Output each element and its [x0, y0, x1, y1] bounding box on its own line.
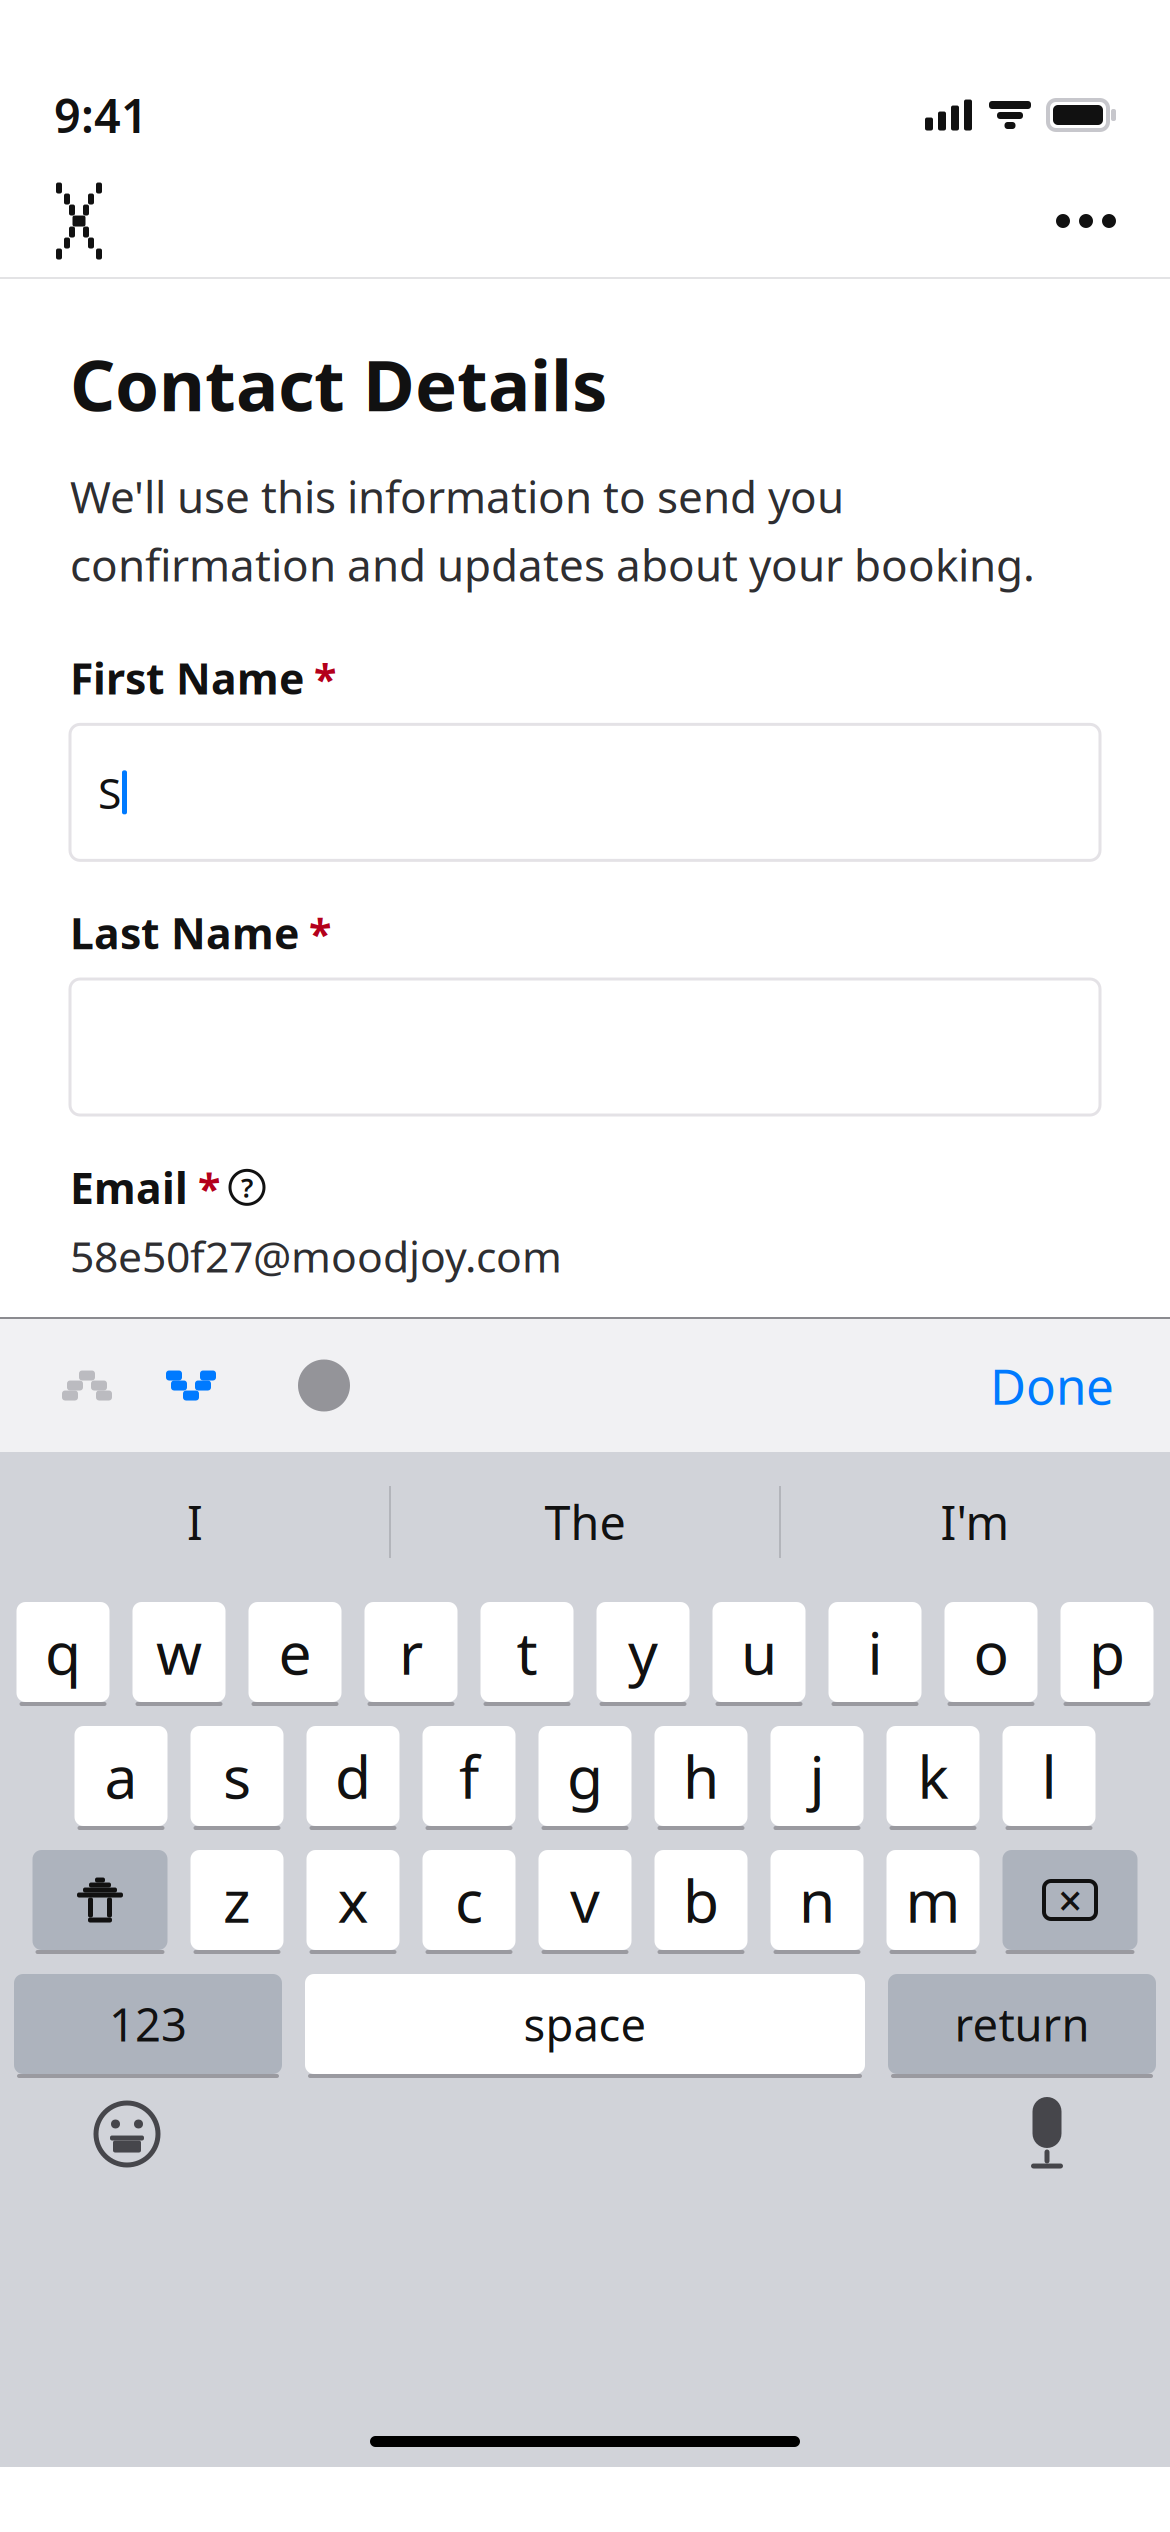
button[interactable]: p [1060, 1602, 1153, 1706]
staticText: r [399, 1613, 423, 1691]
button[interactable]: v [538, 1850, 631, 1954]
staticText: The [544, 1491, 625, 1553]
staticText: h [683, 1737, 719, 1815]
staticText: space [523, 1994, 646, 2054]
staticText: m [905, 1861, 960, 1939]
staticText: n [799, 1861, 835, 1939]
staticText: 9:41 [54, 84, 148, 146]
button[interactable]: space [305, 1974, 865, 2078]
staticText: Contact Details [70, 337, 607, 431]
button[interactable]: g [538, 1726, 631, 1830]
button[interactable]: m [886, 1850, 979, 1954]
staticText: l [1041, 1737, 1056, 1815]
staticText: v [570, 1861, 600, 1939]
staticText: q [45, 1613, 81, 1691]
staticText: I [187, 1491, 203, 1553]
button[interactable]: d [306, 1726, 399, 1830]
button[interactable] [70, 979, 1100, 1115]
button[interactable]: AutoFill [284, 1345, 364, 1425]
button[interactable]: c [422, 1850, 515, 1954]
button[interactable]: Shift [32, 1850, 167, 1954]
staticText: w [156, 1613, 202, 1691]
button[interactable]: return [888, 1974, 1156, 2078]
staticText: confirmation and updates about your book… [70, 535, 1035, 594]
staticText: g [567, 1737, 603, 1815]
button[interactable]: Dictation [1016, 2096, 1078, 2172]
staticText: Done [990, 1353, 1114, 1418]
staticText: j [809, 1737, 824, 1815]
button[interactable]: e [248, 1602, 341, 1706]
button[interactable]: Emoji keyboard [92, 2099, 162, 2169]
staticText: k [917, 1737, 948, 1815]
staticText: return [954, 1994, 1089, 2054]
staticText: 58e50f27@moodjoy.com [70, 1228, 562, 1284]
button[interactable]: r [364, 1602, 457, 1706]
staticText: u [741, 1613, 777, 1691]
staticText: × [1058, 1872, 1082, 1928]
button[interactable]: I [1, 1466, 389, 1578]
staticText: y [628, 1613, 658, 1691]
staticText: o [973, 1613, 1008, 1691]
button[interactable]: q [16, 1602, 109, 1706]
staticText: * [198, 1160, 220, 1215]
button[interactable]: z [190, 1850, 283, 1954]
button[interactable]: a [74, 1726, 167, 1830]
staticText: S [98, 764, 121, 821]
button[interactable]: More options [1042, 178, 1130, 264]
staticText: We'll use this information to send you [70, 467, 844, 525]
button[interactable]: Previous field [46, 1354, 128, 1416]
staticText: 123 [109, 1994, 187, 2054]
staticText: ? [241, 1170, 253, 1205]
button[interactable]: Next field [150, 1354, 232, 1416]
button[interactable]: s [190, 1726, 283, 1830]
staticText: x [337, 1861, 368, 1939]
staticText: First Name [70, 650, 304, 706]
staticText: Email [70, 1159, 188, 1216]
button[interactable]: f [422, 1726, 515, 1830]
button[interactable]: u [712, 1602, 805, 1706]
staticText: s [223, 1737, 251, 1815]
staticText: * [309, 905, 331, 960]
button[interactable]: i [828, 1602, 921, 1706]
button[interactable]: 123 [14, 1974, 282, 2078]
staticText: z [223, 1861, 251, 1939]
button[interactable]: Close [40, 178, 118, 264]
button[interactable]: Done [980, 1337, 1124, 1434]
button[interactable]: l [1002, 1726, 1095, 1830]
staticText: a [104, 1737, 137, 1815]
staticText: b [683, 1861, 719, 1939]
button[interactable]: h [654, 1726, 747, 1830]
button[interactable]: I'm [781, 1466, 1169, 1578]
staticText: I'm [940, 1491, 1009, 1553]
button[interactable]: j [770, 1726, 863, 1830]
staticText: e [278, 1613, 311, 1691]
button[interactable]: w [132, 1602, 225, 1706]
button[interactable]: S [70, 724, 1100, 860]
button[interactable]: k [886, 1726, 979, 1830]
staticText: p [1089, 1613, 1125, 1691]
staticText: f [459, 1737, 479, 1815]
button[interactable]: y [596, 1602, 689, 1706]
button[interactable]: t [480, 1602, 573, 1706]
staticText: c [455, 1861, 483, 1939]
button[interactable]: b [654, 1850, 747, 1954]
button[interactable]: The [391, 1466, 779, 1578]
button[interactable]: Delete [1002, 1850, 1137, 1954]
staticText: t [516, 1613, 537, 1691]
staticText: d [335, 1737, 371, 1815]
staticText: i [867, 1613, 882, 1691]
button[interactable]: x [306, 1850, 399, 1954]
staticText: Last Name [70, 904, 299, 961]
button[interactable]: n [770, 1850, 863, 1954]
button[interactable]: o [944, 1602, 1037, 1706]
staticText: * [314, 651, 336, 705]
